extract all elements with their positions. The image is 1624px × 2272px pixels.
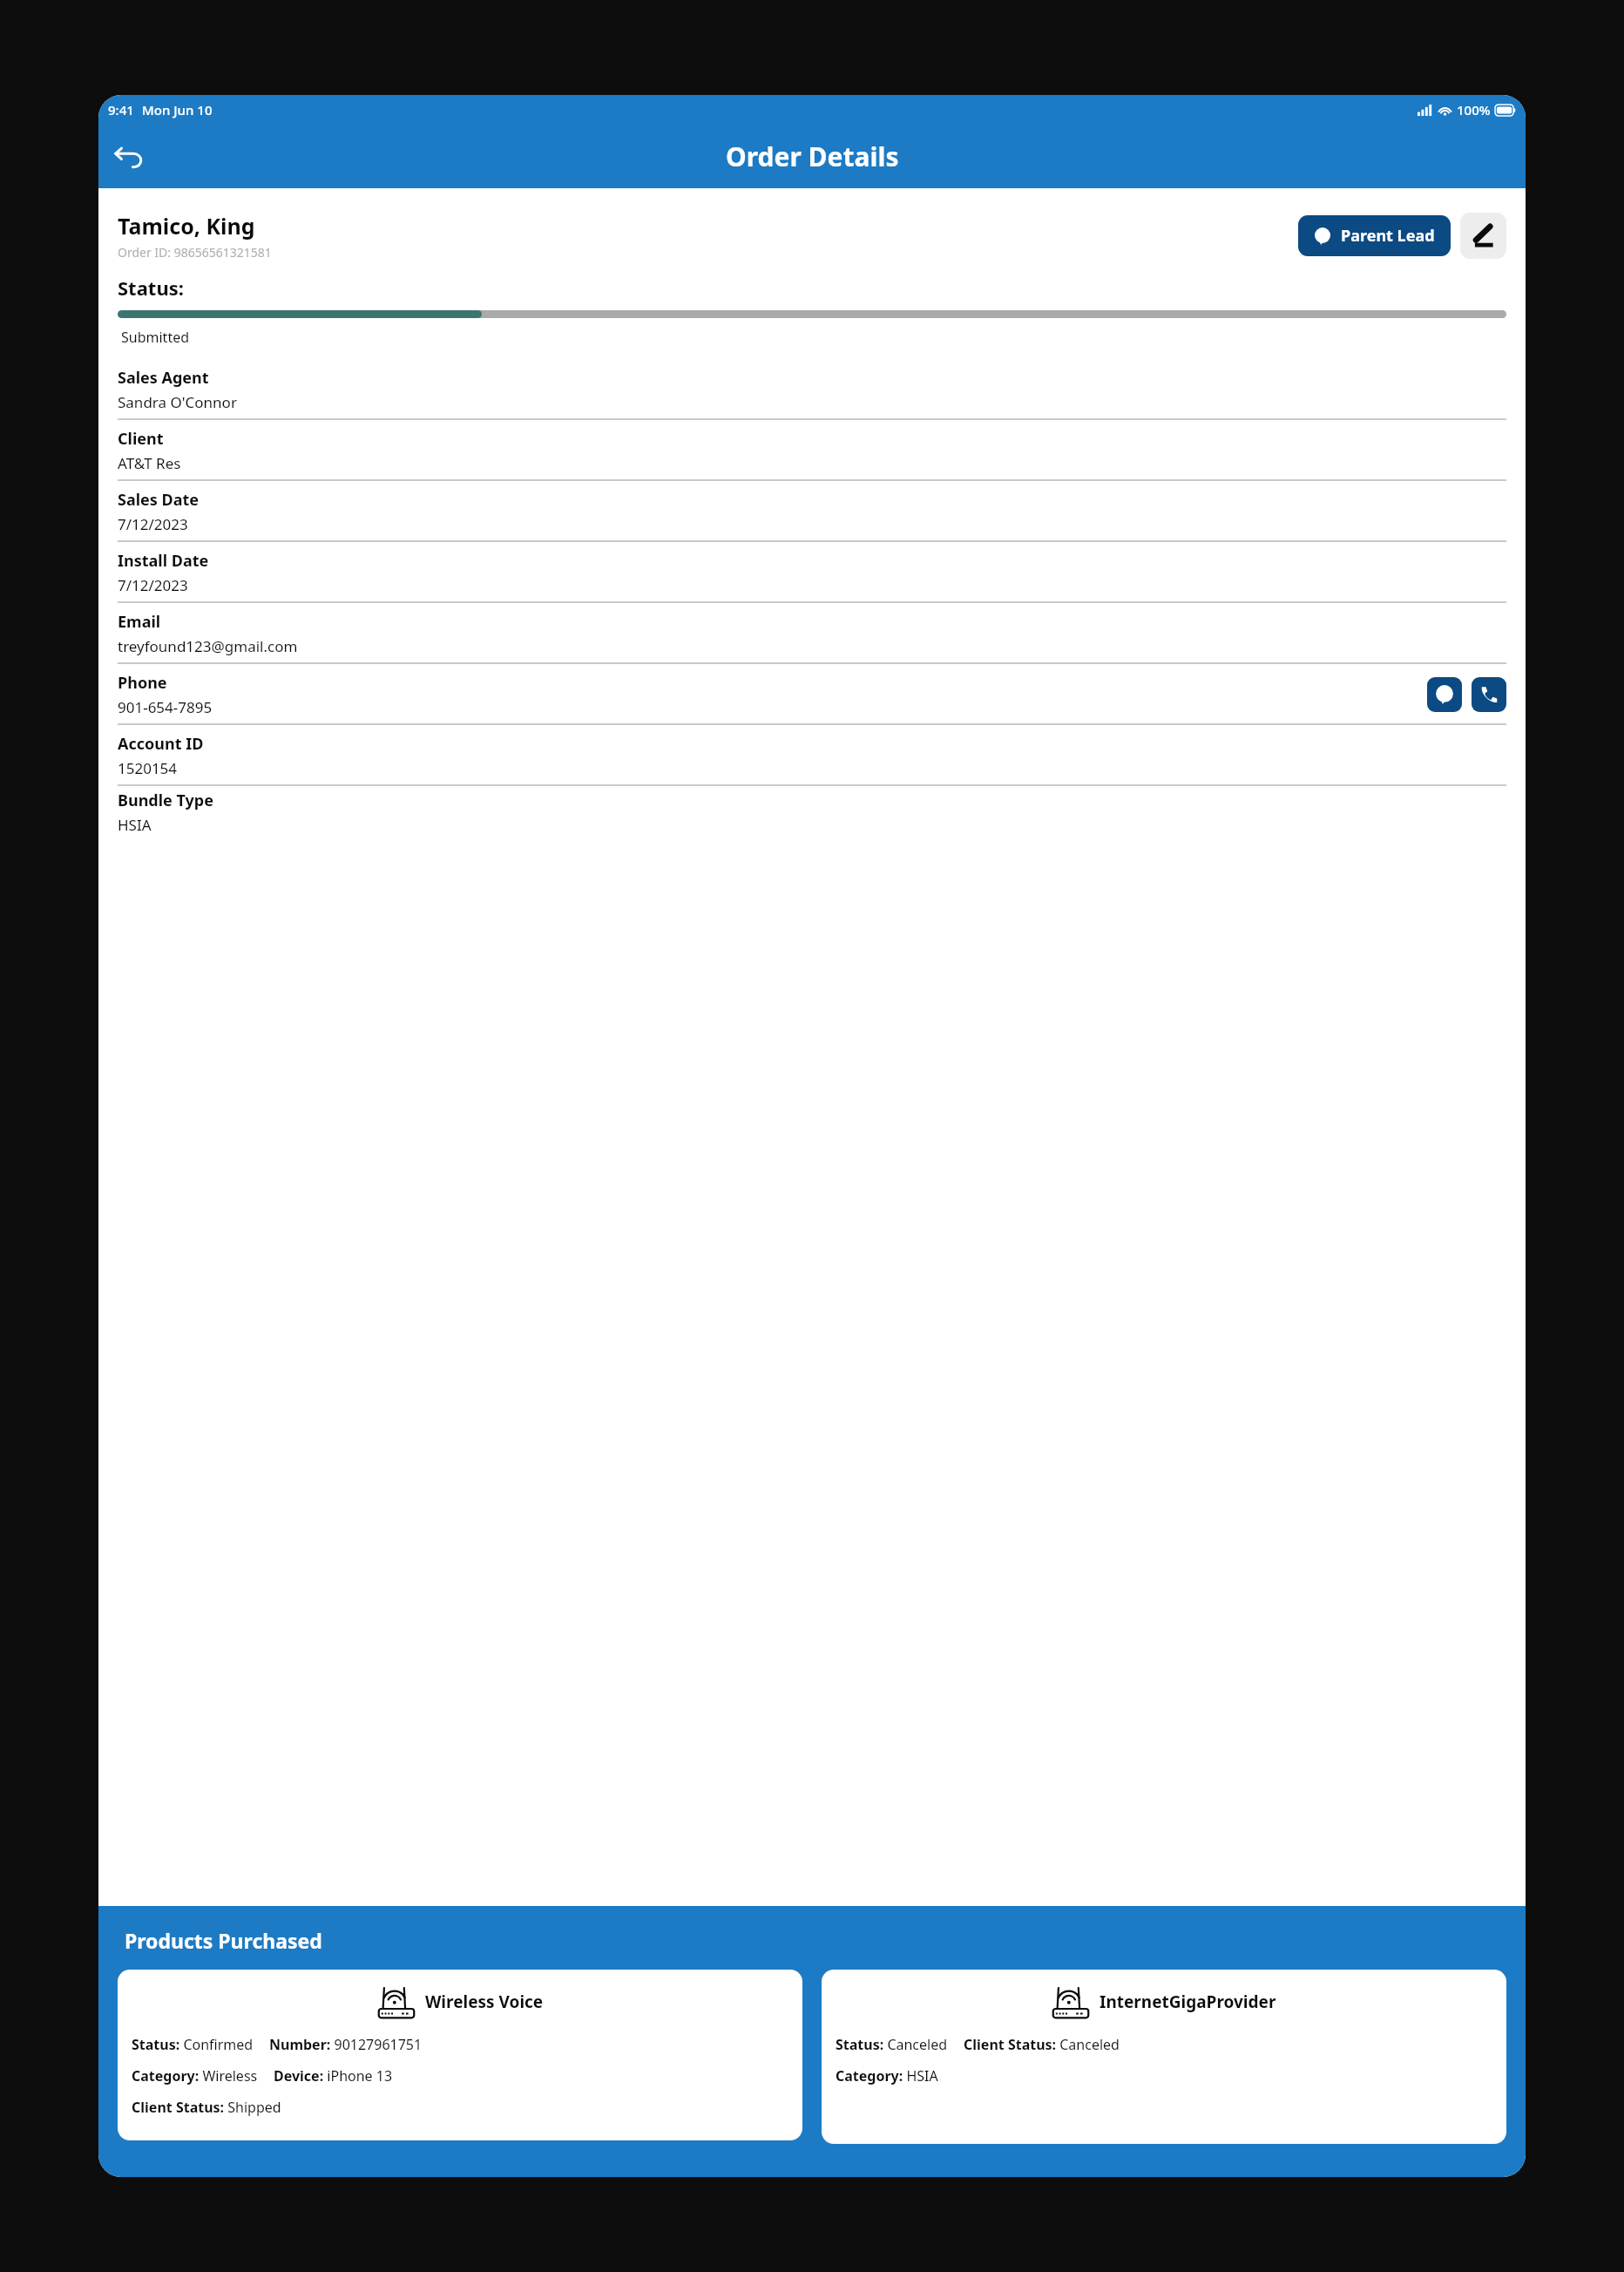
staticText: Phone [118,672,167,694]
staticText: Status: [118,275,184,301]
staticText: 901-654-7895 [118,697,213,717]
staticText: Submitted [121,328,190,347]
staticText: Account ID [118,733,204,755]
button[interactable]: Message [1427,677,1462,712]
staticText: Category: HSIA [836,2066,938,2085]
staticText: Client Status: Canceled [964,2035,1120,2054]
staticText: Device: iPhone 13 [274,2066,393,2085]
staticText: Sales Date [118,489,200,511]
staticText: InternetGigaProvider [1100,1991,1276,2013]
button[interactable]: Call [1472,677,1506,712]
button[interactable]: Back [109,136,151,178]
staticText: Tamico, King [118,211,255,241]
staticText: Category: Wireless [132,2066,258,2085]
staticText: 7/12/2023 [118,575,188,595]
staticText: Number: 90127961751 [269,2035,423,2054]
staticText: Sales Agent [118,367,209,389]
staticText: treyfound123@gmail.com [118,636,298,656]
staticText: Status: Canceled [836,2035,948,2054]
button[interactable]: InternetGigaProvider [822,1970,1506,2144]
staticText: Wireless Voice [425,1991,544,2013]
button[interactable]: Edit [1460,213,1506,259]
staticText: Install Date [118,550,209,572]
staticText: Email [118,611,161,633]
staticText: Status: Confirmed [132,2035,254,2054]
staticText: 100% [1457,101,1491,119]
button[interactable]: Wireless Voice [118,1970,802,2140]
staticText: Client [118,428,164,450]
staticText: Bundle Type [118,790,213,811]
staticText: Products Purchased [125,1927,322,1954]
staticText: HSIA [118,815,152,835]
staticText: 7/12/2023 [118,514,188,534]
button[interactable]: Parent Lead [1298,215,1451,256]
staticText: Mon Jun 10 [142,101,213,119]
staticText: Parent Lead [1341,225,1435,247]
staticText: 9:41 [108,101,134,119]
staticText: Client Status: Shipped [132,2098,281,2117]
staticText: Order ID: 98656561321581 [118,244,272,261]
staticText: AT&T Res [118,453,181,473]
staticText: Order Details [726,139,899,174]
staticText: Sandra O'Connor [118,392,237,412]
staticText: 1520154 [118,758,178,778]
